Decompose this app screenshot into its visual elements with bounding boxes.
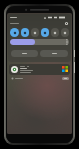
button[interactable]: Quick setting [31,28,39,37]
button[interactable] [40,50,68,57]
button[interactable]: Quick setting [10,28,19,37]
button[interactable] [9,64,70,75]
button[interactable]: Quick setting [51,28,59,37]
button[interactable]: Quick setting [61,28,69,37]
button[interactable]: Quick setting [41,28,49,37]
button[interactable]: Brightness [10,39,69,45]
button[interactable] [62,77,69,80]
button[interactable]: Quick setting [21,28,29,37]
button[interactable]: Settings [64,21,69,26]
button[interactable] [10,76,24,81]
button[interactable] [11,50,38,57]
